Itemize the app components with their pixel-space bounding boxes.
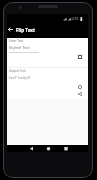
button[interactable] xyxy=(7,145,34,152)
button[interactable]: Enter Text xyxy=(7,38,88,67)
staticText: txeT hsilytS xyxy=(9,75,31,80)
button[interactable] xyxy=(78,55,82,59)
button[interactable]: Flip Text xyxy=(7,23,88,38)
staticText: Stylish Text xyxy=(9,45,30,50)
button[interactable] xyxy=(78,92,82,96)
button[interactable] xyxy=(8,27,13,32)
button[interactable]: Output Text xyxy=(7,68,88,99)
button[interactable] xyxy=(34,145,61,152)
staticText: Flip Text xyxy=(16,27,35,33)
button[interactable] xyxy=(78,85,82,89)
staticText: Enter Text xyxy=(9,39,24,43)
staticText: Output Text xyxy=(9,69,26,73)
staticText: 4:10 xyxy=(72,17,79,21)
button[interactable] xyxy=(61,145,88,152)
